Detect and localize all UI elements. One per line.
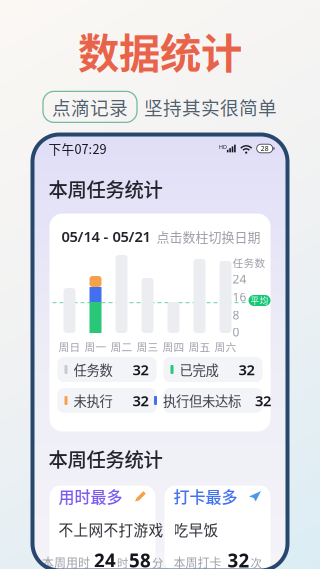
staticText: 05/14 - 05/21 — [61, 226, 150, 246]
staticText: 吃早饭 — [173, 519, 218, 540]
staticText: 任务数 — [73, 360, 112, 379]
staticText: 周五 — [188, 339, 210, 354]
staticText: 分 — [152, 554, 163, 569]
staticText: 8 — [232, 307, 239, 323]
staticText: 32 — [132, 360, 148, 379]
button[interactable]: 任务数 — [57, 357, 156, 382]
staticText: 下午07:29 — [48, 139, 106, 158]
staticText: 次 — [250, 554, 261, 569]
staticText: 打卡最多 — [173, 484, 237, 508]
staticText: 数据统计 — [78, 20, 242, 80]
staticText: 点滴记录 — [52, 93, 128, 120]
staticText: 24 — [94, 548, 116, 569]
staticText: 周日 — [58, 339, 80, 354]
staticText: 32 — [227, 548, 249, 569]
staticText: 点击数柱切换日期 — [156, 227, 260, 246]
staticText: 16 — [232, 289, 246, 305]
staticText: 28 — [261, 144, 269, 153]
button[interactable]: 用时最多 — [49, 485, 155, 569]
staticText: 任务数 — [232, 255, 265, 270]
staticText: 周六 — [214, 339, 236, 354]
staticText: 已完成 — [179, 360, 218, 379]
staticText: 平均 — [250, 294, 268, 307]
staticText: 不上网不打游戏 — [58, 519, 163, 540]
staticText: 24 — [232, 271, 246, 287]
staticText: 32 — [238, 360, 254, 379]
button[interactable]: 未执行 — [57, 388, 156, 413]
staticText: 周二 — [110, 339, 132, 354]
staticText: 周四 — [162, 339, 184, 354]
button[interactable]: 打卡最多 — [164, 485, 270, 569]
button[interactable]: 执行但未达标 — [163, 388, 262, 413]
staticText: 本周任务统计 — [48, 444, 162, 472]
staticText: 32 — [132, 391, 148, 410]
staticText: 本周用时 — [42, 553, 90, 569]
button[interactable]: 已完成 — [163, 357, 262, 382]
staticText: HD — [219, 143, 227, 151]
staticText: 坚持其实很简单 — [144, 93, 277, 120]
staticText: 58 — [129, 548, 151, 569]
staticText: 0 — [232, 324, 239, 340]
staticText: 执行但未达标 — [163, 391, 241, 410]
staticText: 未执行 — [73, 391, 112, 410]
staticText: 用时最多 — [58, 484, 122, 508]
staticText: 本周任务统计 — [48, 174, 162, 202]
staticText: 时 — [117, 554, 128, 569]
staticText: 周三 — [136, 339, 158, 354]
staticText: 32 — [255, 391, 271, 410]
staticText: 周一 — [84, 339, 106, 354]
staticText: 本周打卡 — [173, 553, 221, 569]
